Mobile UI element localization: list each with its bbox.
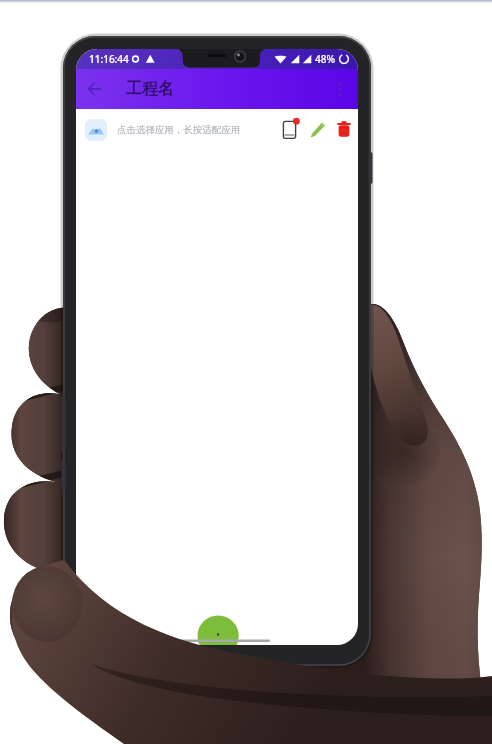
button[interactable]: 点击选择应用，长按适配应用 [76,109,358,151]
staticText: 点击选择应用，长按适配应用 [117,124,241,136]
staticText: 11:16:44 [89,52,129,66]
button[interactable]: Delete [331,117,357,143]
button[interactable]: More options [322,71,358,107]
staticText: 48% [315,52,335,66]
button[interactable]: Device [277,116,305,144]
staticText: 工程名 [126,79,174,99]
button[interactable]: Back [76,70,114,108]
button[interactable]: Edit [305,117,331,143]
